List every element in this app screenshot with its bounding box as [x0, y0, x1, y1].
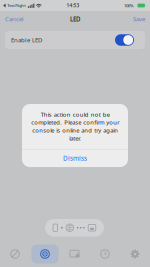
button[interactable]: Settings — [120, 242, 150, 266]
button[interactable]: Cancel — [1, 11, 28, 26]
staticText: 100% — [124, 3, 134, 8]
button[interactable]: History — [90, 242, 120, 266]
staticText: This action could not be completed. Plea… — [31, 110, 119, 142]
staticText: 14:53 — [66, 2, 79, 9]
staticText: Cancel — [5, 15, 24, 23]
button[interactable]: Camera — [30, 242, 60, 266]
staticText: Save — [133, 15, 145, 23]
staticText: Dismiss — [63, 154, 87, 163]
button[interactable]: Dismiss — [22, 150, 128, 167]
button[interactable]: Save — [129, 11, 149, 26]
button[interactable]: Screen — [60, 242, 90, 266]
button[interactable]: Enable LED — [5, 31, 145, 49]
button[interactable]: Power — [0, 242, 30, 266]
staticText: TestFlight — [7, 3, 26, 8]
staticText: LED — [70, 15, 80, 23]
staticText: Enable LED — [11, 36, 42, 44]
